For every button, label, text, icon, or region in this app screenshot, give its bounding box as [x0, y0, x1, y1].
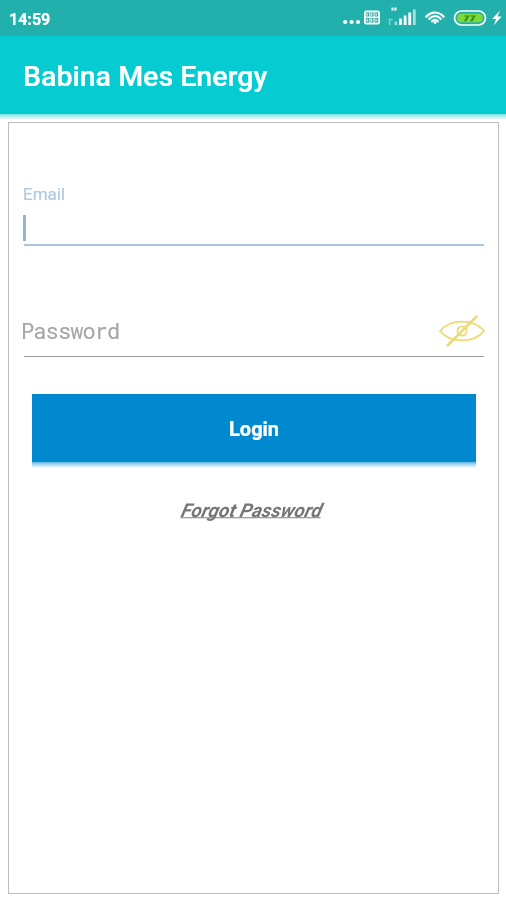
button[interactable]: Forgot Password [168, 490, 333, 530]
staticText: Email [23, 184, 66, 204]
button[interactable]: Password [22, 302, 486, 357]
staticText: Forgot Password [180, 499, 321, 521]
staticText: Password [21, 316, 120, 345]
staticText: 14:59 [9, 10, 51, 29]
button[interactable]: Email [22, 174, 486, 246]
staticText: Login [229, 417, 280, 440]
staticText: Babina Mes Energy [23, 60, 268, 93]
button[interactable]: Login [32, 394, 476, 462]
button[interactable]: Show password [434, 307, 490, 355]
